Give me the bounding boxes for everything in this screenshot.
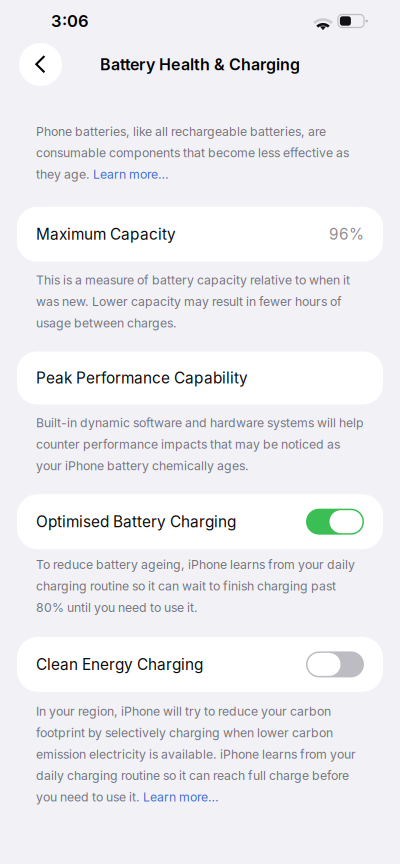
button[interactable]: Optimised Battery Charging xyxy=(17,494,383,549)
button[interactable]: Peak Performance Capability xyxy=(17,351,383,404)
button[interactable]: Maximum Capacity xyxy=(17,207,383,262)
staticText: This is a measure of battery capacity re… xyxy=(36,273,350,330)
staticText: Clean Energy Charging xyxy=(36,655,203,674)
staticText: Optimised Battery Charging xyxy=(36,512,236,531)
staticText: Peak Performance Capability xyxy=(36,369,248,387)
button[interactable]: Clean Energy Charging xyxy=(17,637,383,692)
staticText: 3:06 xyxy=(51,11,89,31)
staticText: To reduce battery ageing, iPhone learns … xyxy=(36,557,355,615)
staticText: Maximum Capacity xyxy=(36,225,176,243)
staticText: Built-in dynamic software and hardware s… xyxy=(36,415,364,473)
staticText: Phone batteries, like all rechargeable b… xyxy=(36,124,349,182)
button[interactable]: Back xyxy=(19,43,62,86)
staticText: Battery Health & Charging xyxy=(100,55,300,74)
staticText: 96% xyxy=(329,225,364,243)
staticText: In your region, iPhone will try to reduc… xyxy=(36,704,356,804)
